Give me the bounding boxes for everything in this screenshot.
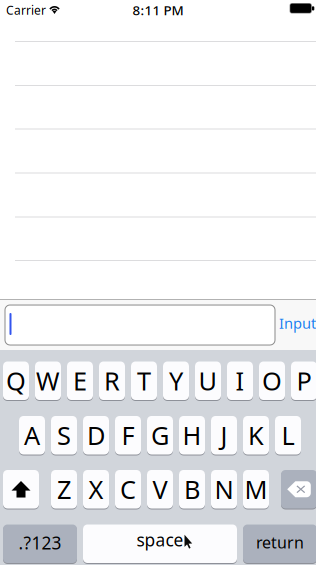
staticText: N (214, 472, 233, 506)
button[interactable]: Y (163, 361, 189, 401)
button[interactable]: R (99, 361, 125, 401)
button[interactable]: N (211, 470, 237, 509)
staticText: H (182, 418, 201, 452)
staticText: U (198, 364, 217, 397)
button[interactable]: U (195, 361, 221, 401)
button[interactable]: J (211, 416, 237, 455)
button[interactable]: A (19, 416, 45, 455)
button[interactable]: O (259, 361, 285, 401)
button[interactable]: L (275, 416, 301, 455)
staticText: D (87, 418, 105, 452)
button[interactable]: B (179, 470, 205, 509)
button[interactable]: G (147, 416, 173, 455)
staticText: .?123 (18, 531, 61, 554)
button[interactable]: T (131, 361, 157, 401)
button[interactable]: C (115, 470, 141, 509)
button[interactable]: K (243, 416, 269, 455)
staticText: G (151, 418, 169, 452)
staticText: P (296, 364, 311, 397)
staticText: K (248, 418, 264, 452)
staticText: W (36, 364, 60, 397)
button[interactable]: X (83, 470, 109, 509)
button[interactable]: P (291, 361, 316, 401)
staticText: return (256, 532, 304, 553)
button[interactable]: H (179, 416, 205, 455)
staticText: Q (6, 364, 26, 397)
button[interactable]: V (147, 470, 173, 509)
staticText: Carrier (6, 2, 46, 18)
button[interactable]: M (243, 470, 269, 509)
staticText: A (24, 418, 40, 452)
button[interactable]: .?123 (3, 524, 77, 564)
staticText: X (88, 472, 103, 506)
staticText: S (57, 418, 71, 452)
staticText: F (121, 418, 134, 452)
staticText: O (262, 364, 282, 397)
staticText: B (184, 472, 200, 506)
button[interactable]: space (83, 524, 237, 564)
staticText: J (220, 418, 227, 452)
staticText: 8:11 PM (132, 1, 183, 19)
staticText: I (235, 364, 244, 397)
button[interactable]: Shift (3, 470, 39, 509)
staticText: Input (279, 313, 316, 333)
staticText: T (137, 364, 151, 397)
button[interactable]: I (227, 361, 253, 401)
staticText: R (104, 364, 120, 397)
button[interactable]: return (243, 524, 316, 564)
staticText: space (136, 528, 183, 551)
staticText: M (244, 472, 267, 506)
staticText: Z (57, 472, 71, 506)
button[interactable]: F (115, 416, 141, 455)
button[interactable]: S (51, 416, 77, 455)
button[interactable]: Q (3, 361, 29, 401)
staticText: V (152, 472, 167, 506)
staticText: Y (169, 364, 183, 397)
button[interactable]: D (83, 416, 109, 455)
button[interactable]: Input (279, 314, 316, 332)
staticText: L (281, 418, 294, 452)
button[interactable]: Z (51, 470, 77, 509)
staticText: E (73, 364, 87, 397)
button[interactable]: E (67, 361, 93, 401)
button[interactable]: W (35, 361, 61, 401)
staticText: C (120, 472, 136, 506)
button[interactable]: Delete (281, 470, 316, 509)
